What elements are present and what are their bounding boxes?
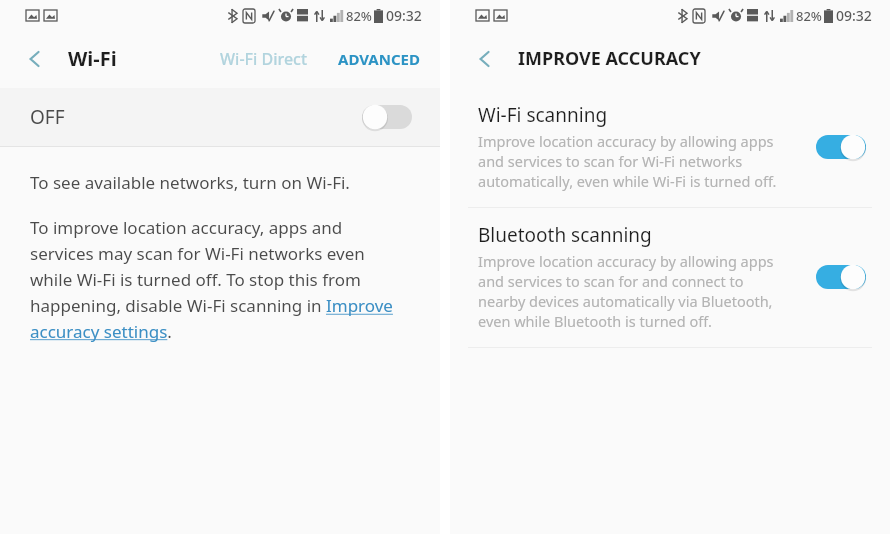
button[interactable]: OFF — [0, 88, 440, 146]
staticText: Improve location accuracy by allowing ap… — [478, 251, 774, 331]
staticText: OFF — [30, 104, 65, 130]
staticText: 09:32 — [386, 6, 422, 25]
staticText: IMPROVE ACCURACY — [518, 46, 701, 71]
staticText: Improve location accuracy by allowing ap… — [478, 131, 777, 191]
button[interactable]: Back — [14, 38, 56, 80]
staticText: 09:32 — [836, 6, 872, 25]
button[interactable]: To improve location accuracy, apps and s… — [30, 216, 402, 343]
button[interactable]: Wi-Fi scanning — [450, 88, 890, 207]
staticText: Bluetooth scanning — [478, 222, 652, 248]
staticText: Wi-Fi — [68, 45, 117, 72]
button[interactable]: On — [816, 264, 866, 290]
staticText: 82% — [796, 7, 822, 25]
button[interactable]: Wi-Fi Direct — [214, 40, 314, 78]
button[interactable]: On — [816, 134, 866, 160]
button[interactable]: Off — [362, 104, 412, 130]
staticText: ADVANCED — [338, 49, 420, 69]
staticText: To see available networks, turn on Wi-Fi… — [30, 171, 350, 194]
staticText: 82% — [346, 7, 372, 25]
staticText: Wi-Fi scanning — [478, 102, 608, 128]
staticText: Wi-Fi Direct — [220, 48, 308, 70]
button[interactable]: ADVANCED — [332, 41, 426, 77]
button[interactable]: Bluetooth scanning — [450, 208, 890, 347]
button[interactable]: Back — [464, 38, 506, 80]
